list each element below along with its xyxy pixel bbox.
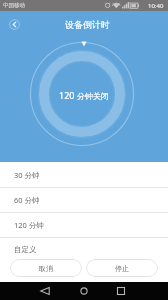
- staticText: 10:40: [148, 2, 164, 10]
- staticText: 停止: [115, 264, 129, 273]
- button[interactable]: 停止: [86, 259, 158, 277]
- button[interactable]: Back: [36, 282, 54, 300]
- staticText: 自定义: [14, 245, 37, 254]
- button[interactable]: 取消: [10, 259, 82, 277]
- staticText: 设备倒计时: [65, 19, 110, 30]
- staticText: 120: [59, 89, 77, 101]
- staticText: 分钟关闭: [77, 91, 109, 101]
- staticText: 中国移动: [3, 2, 25, 9]
- staticText: 取消: [39, 264, 53, 273]
- staticText: 60 分钟: [14, 195, 40, 205]
- staticText: 120 分钟: [14, 220, 44, 230]
- button[interactable]: Back: [9, 19, 20, 30]
- button[interactable]: 30 分钟: [0, 162, 168, 187]
- button[interactable]: 自定义: [0, 238, 168, 261]
- staticText: 30 分钟: [14, 170, 40, 180]
- button[interactable]: Home: [75, 282, 93, 300]
- button[interactable]: Recent apps: [112, 282, 130, 300]
- button[interactable]: 60 分钟: [0, 188, 168, 212]
- button[interactable]: 120 分钟: [0, 213, 168, 237]
